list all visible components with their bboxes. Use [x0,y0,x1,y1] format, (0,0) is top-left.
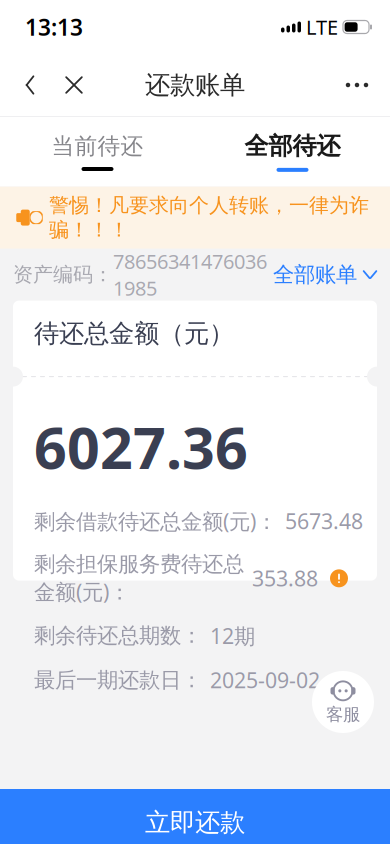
button[interactable]: 全部账单 [273,253,377,296]
staticText: 5673.48 [285,507,363,535]
staticText: LTE [306,14,338,40]
staticText: 剩余待还总期数： [34,623,202,649]
staticText: 13:13 [25,12,83,42]
staticText: 全部待还 [244,131,340,161]
staticText: 当前待还 [51,132,143,160]
button[interactable]: 立即还款 [0,789,390,844]
staticText: 剩余担保服务费待还总金额(元)： [34,551,244,606]
staticText: 786563414760361985 [113,248,267,301]
staticText: 6027.36 [34,409,248,485]
staticText: 待还总金额（元） [34,318,234,349]
staticText: 2025-09-02 [210,666,320,694]
staticText: 警惕！凡要求向个人转账，一律为诈骗！！！ [49,193,369,242]
button[interactable]: 返回 [8,63,52,107]
staticText: 立即还款 [145,807,245,838]
staticText: 12期 [210,622,255,650]
button[interactable]: 更多 [332,63,382,107]
staticText: 最后一期还款日： [34,667,202,693]
staticText: 剩余借款待还总金额(元)： [34,507,277,535]
staticText: 资产编码： [13,262,113,287]
staticText: 全部账单 [273,261,357,288]
button[interactable]: 费用说明 [326,565,352,591]
button[interactable]: 客服 [312,671,374,733]
staticText: 客服 [326,704,360,725]
button[interactable]: 全部待还 [195,117,390,187]
button[interactable]: 关闭 [52,63,96,107]
staticText: 353.88 [252,564,318,592]
button[interactable]: 当前待还 [0,117,195,187]
staticText: 还款账单 [145,69,245,100]
